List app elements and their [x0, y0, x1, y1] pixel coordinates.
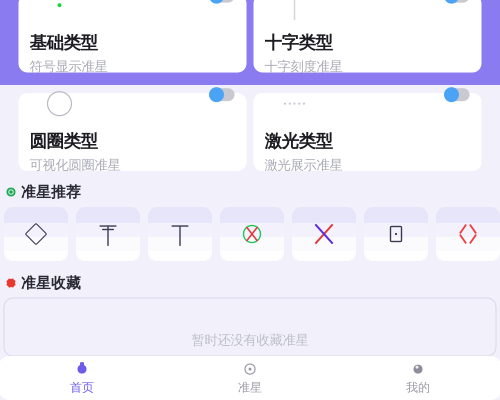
staticText: 基础类型: [29, 32, 97, 53]
button[interactable]: Crosshair preset: [148, 207, 212, 261]
staticText: 十字类型: [264, 32, 332, 53]
staticText: 准星推荐: [21, 183, 81, 201]
staticText: 准星: [238, 380, 262, 395]
button[interactable]: 准星: [166, 355, 334, 400]
button[interactable]: 首页: [0, 355, 166, 400]
button[interactable]: 基础类型: [18, 0, 246, 72]
staticText: 首页: [70, 380, 94, 395]
staticText: 圆圈类型: [29, 131, 97, 152]
button[interactable]: Crosshair preset: [292, 207, 356, 261]
button[interactable]: Crosshair preset: [220, 207, 284, 261]
button[interactable]: Crosshair preset: [4, 207, 68, 261]
staticText: 符号显示准星: [29, 58, 107, 75]
staticText: 十字刻度准星: [264, 58, 342, 75]
staticText: 激光展示准星: [264, 157, 342, 173]
button[interactable]: Crosshair preset: [76, 207, 140, 261]
button[interactable]: Crosshair preset: [436, 207, 500, 261]
button[interactable]: 十字类型: [253, 0, 481, 72]
staticText: 准星收藏: [21, 274, 81, 292]
button[interactable]: 圆圈类型: [18, 93, 246, 171]
staticText: 激光类型: [264, 131, 332, 152]
button[interactable]: 我的: [334, 355, 500, 400]
button[interactable]: 激光类型: [253, 93, 481, 171]
staticText: 可视化圆圈准星: [29, 157, 120, 173]
staticText: 暂时还没有收藏准星: [191, 332, 308, 348]
staticText: 我的: [406, 380, 430, 395]
button[interactable]: Crosshair preset: [364, 207, 428, 261]
